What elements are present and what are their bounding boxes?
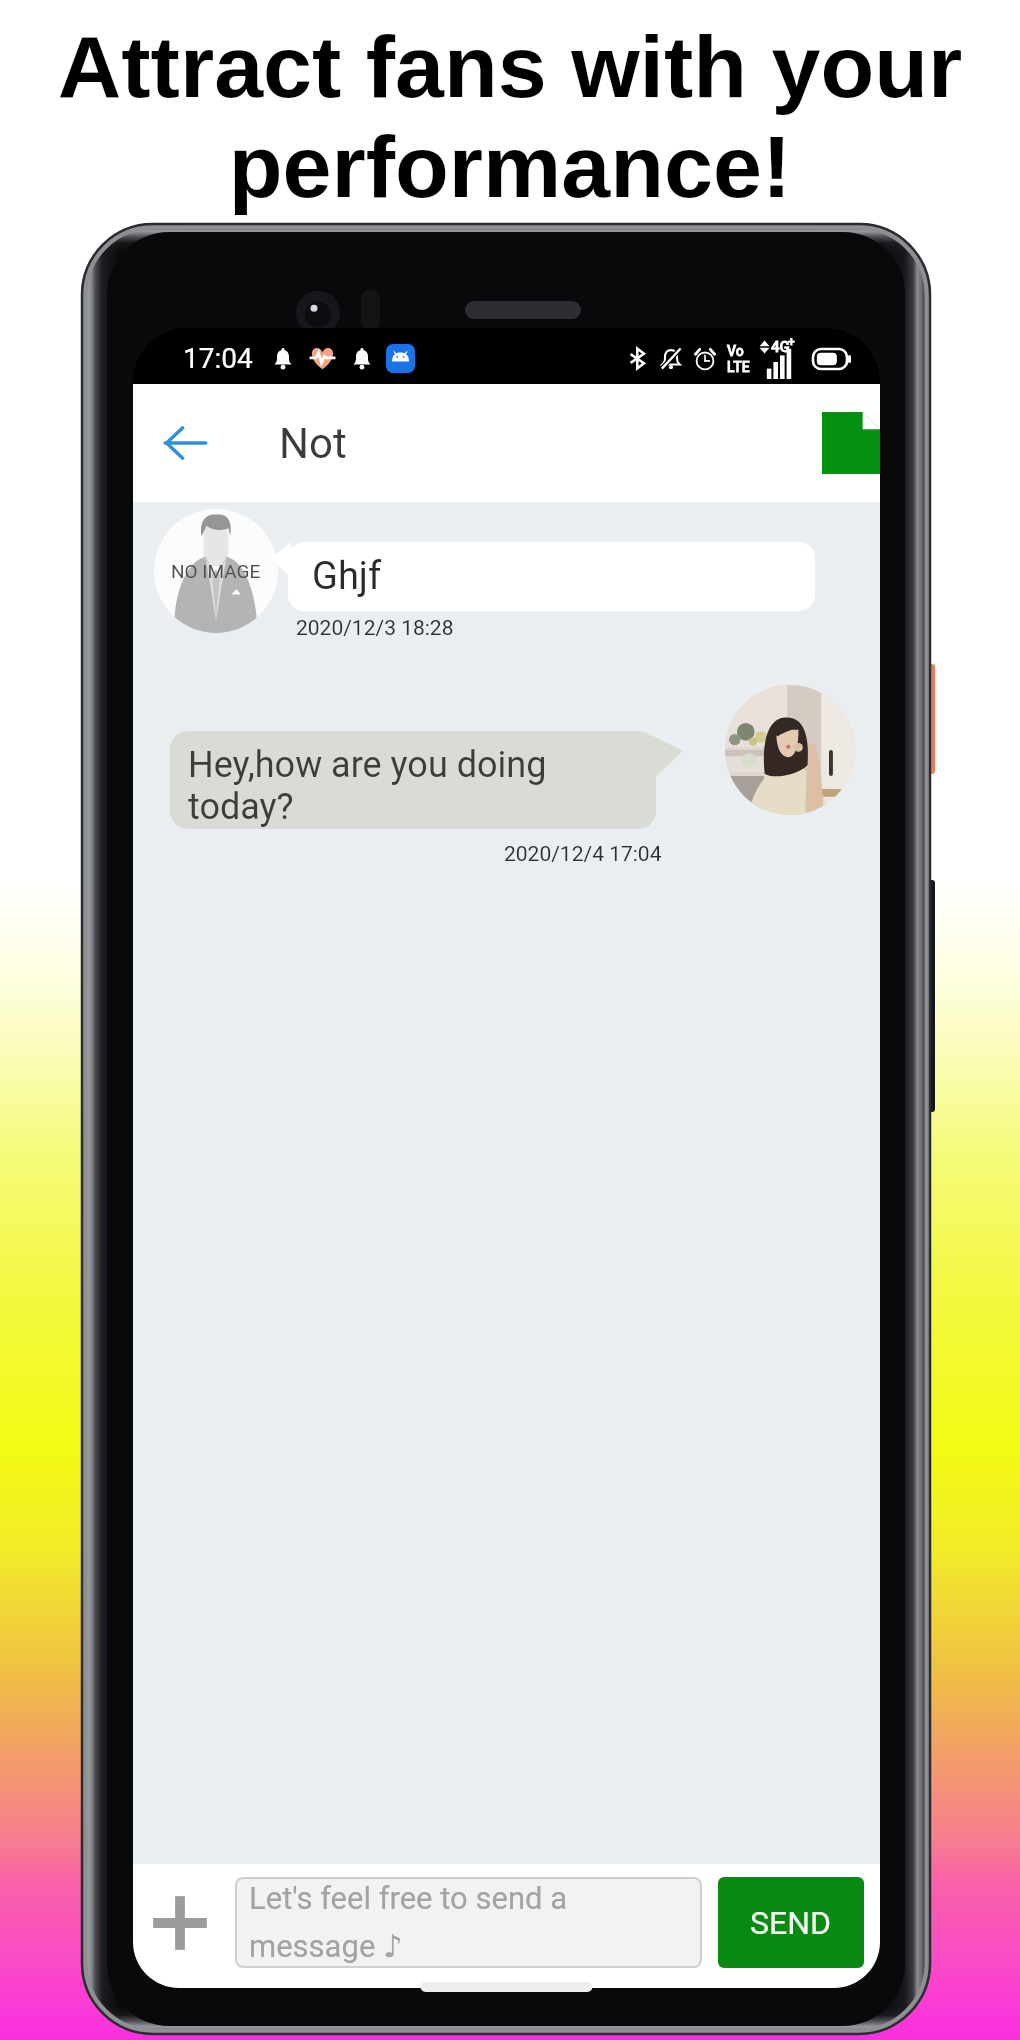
staticText: Vo xyxy=(727,343,744,359)
staticText: Not xyxy=(279,419,347,468)
staticText: 2020/12/3 18:28 xyxy=(296,616,454,641)
staticText: 4G xyxy=(771,338,790,356)
staticText: + xyxy=(788,335,795,349)
staticText: 17:04 xyxy=(183,342,253,375)
staticText: Hey,how are you doing today? xyxy=(188,744,642,828)
staticText: Attract fans with your performance! xyxy=(0,17,1020,216)
button[interactable]: SEND xyxy=(718,1877,864,1968)
staticText: LTE xyxy=(727,359,750,375)
button[interactable]: New note xyxy=(822,384,880,502)
staticText: NO IMAGE xyxy=(171,560,261,582)
button[interactable]: Back xyxy=(133,384,237,502)
staticText: SEND xyxy=(750,1904,832,1942)
button[interactable]: Add attachment xyxy=(137,1880,223,1966)
staticText: 2020/12/4 17:04 xyxy=(504,842,662,867)
staticText: Let's feel free to send a message ♪ xyxy=(249,1880,692,1965)
button[interactable]: Let's feel free to send a message ♪ xyxy=(235,1877,702,1968)
staticText: Ghjf xyxy=(312,554,382,599)
